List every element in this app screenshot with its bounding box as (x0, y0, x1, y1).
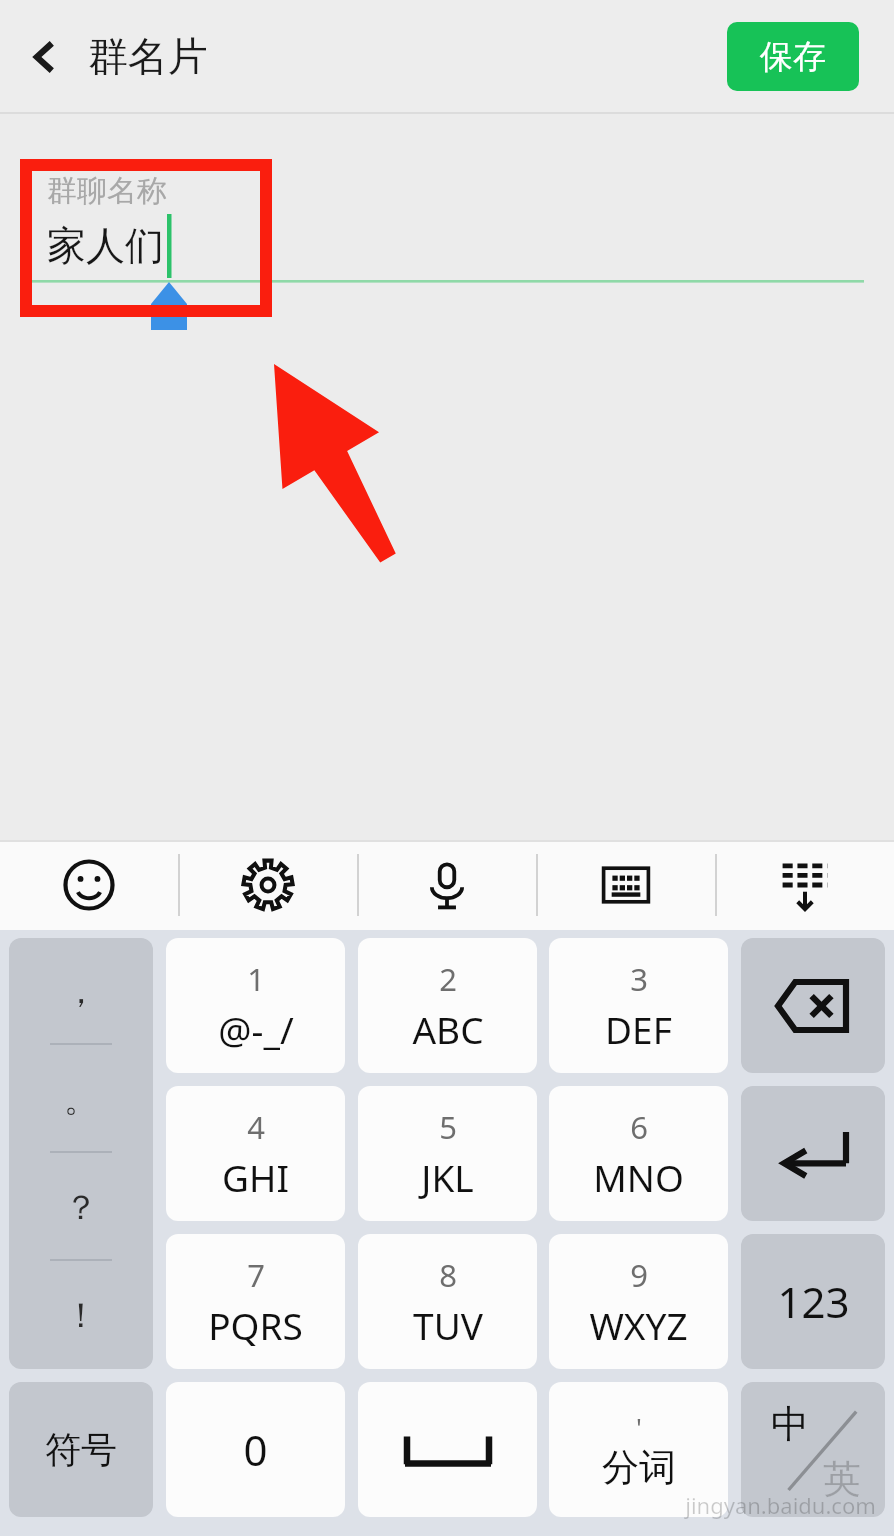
staticText: 。 (64, 1078, 98, 1121)
staticText: GHI (222, 1152, 289, 1202)
staticText: ！ (64, 1294, 98, 1337)
button[interactable]: 2 (358, 938, 537, 1073)
staticText: 保存 (760, 36, 826, 78)
staticText: 7 (247, 1254, 265, 1296)
button[interactable]: 9 (549, 1234, 728, 1369)
staticText: 群名片 (88, 31, 208, 81)
staticText: 1 (247, 958, 265, 1000)
button[interactable]: Backspace (741, 938, 885, 1073)
button[interactable]: 1 (166, 938, 345, 1073)
staticText: WXYZ (589, 1300, 688, 1350)
staticText: JKL (421, 1152, 474, 1202)
button[interactable]: 5 (358, 1086, 537, 1221)
staticText: 2 (439, 958, 457, 1000)
staticText: ？ (64, 1186, 98, 1229)
button[interactable]: Back (14, 26, 76, 88)
staticText: PQRS (208, 1300, 303, 1350)
staticText: 符号 (45, 1427, 117, 1472)
button[interactable]: 0 (166, 1382, 345, 1517)
staticText: 5 (439, 1106, 457, 1148)
button[interactable]: 6 (549, 1086, 728, 1221)
staticText: 8 (439, 1254, 457, 1296)
staticText: 4 (247, 1106, 265, 1148)
staticText: TUV (413, 1300, 483, 1350)
staticText: jingyan.baidu.com (685, 1490, 876, 1520)
button[interactable]: Settings (178, 840, 357, 930)
button[interactable]: 家人们 (47, 221, 164, 270)
staticText: ' (636, 1409, 642, 1444)
staticText: 分词 (602, 1444, 676, 1491)
staticText: 3 (630, 958, 648, 1000)
button[interactable]: 8 (358, 1234, 537, 1369)
staticText: 中 (771, 1400, 809, 1448)
staticText: MNO (593, 1152, 684, 1202)
button[interactable]: 4 (166, 1086, 345, 1221)
staticText: DEF (605, 1004, 672, 1054)
staticText: ABC (412, 1004, 484, 1054)
button[interactable]: 符号 (9, 1382, 153, 1517)
staticText: ， (64, 970, 98, 1013)
button[interactable]: Emoji (0, 840, 178, 930)
staticText: 9 (630, 1254, 648, 1296)
button[interactable]: Keyboard layout (536, 840, 715, 930)
button[interactable]: Voice input (357, 840, 536, 930)
staticText: 英 (823, 1455, 861, 1503)
staticText: 群聊名称 (47, 172, 167, 210)
button[interactable]: Enter (741, 1086, 885, 1221)
staticText: @-_/ (218, 1004, 294, 1054)
button[interactable]: ， (9, 938, 153, 1369)
button[interactable]: Switch Chinese English (741, 1382, 885, 1517)
button[interactable]: 3 (549, 938, 728, 1073)
staticText: 6 (630, 1106, 648, 1148)
button[interactable]: Hide keyboard (715, 840, 894, 930)
button[interactable]: 123 (741, 1234, 885, 1369)
button[interactable]: Space (358, 1382, 537, 1517)
button[interactable]: ' (549, 1382, 728, 1517)
button[interactable]: 7 (166, 1234, 345, 1369)
staticText: 0 (243, 1421, 268, 1478)
button[interactable]: 保存 (727, 22, 859, 91)
staticText: 123 (777, 1273, 850, 1330)
